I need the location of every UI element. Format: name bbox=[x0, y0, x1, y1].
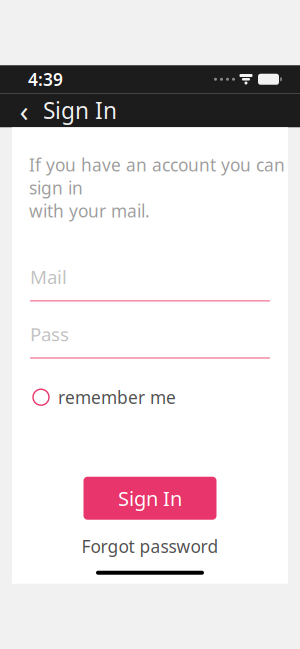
button[interactable]: remember me bbox=[12, 359, 288, 413]
staticText: Pass bbox=[30, 321, 69, 346]
button[interactable]: Forgot password bbox=[12, 530, 288, 563]
button[interactable]: Sign In bbox=[83, 477, 216, 520]
staticText: ‹ bbox=[19, 91, 28, 130]
staticText: remember me bbox=[58, 386, 176, 409]
button[interactable]: Back bbox=[9, 93, 39, 127]
staticText: Sign In bbox=[43, 95, 117, 125]
staticText: Forgot password bbox=[81, 535, 218, 558]
staticText: 4:39 bbox=[28, 68, 63, 91]
staticText: If you have an account you can sign in w… bbox=[29, 153, 285, 222]
staticText: Mail bbox=[30, 264, 67, 289]
staticText: Sign In bbox=[118, 485, 182, 511]
